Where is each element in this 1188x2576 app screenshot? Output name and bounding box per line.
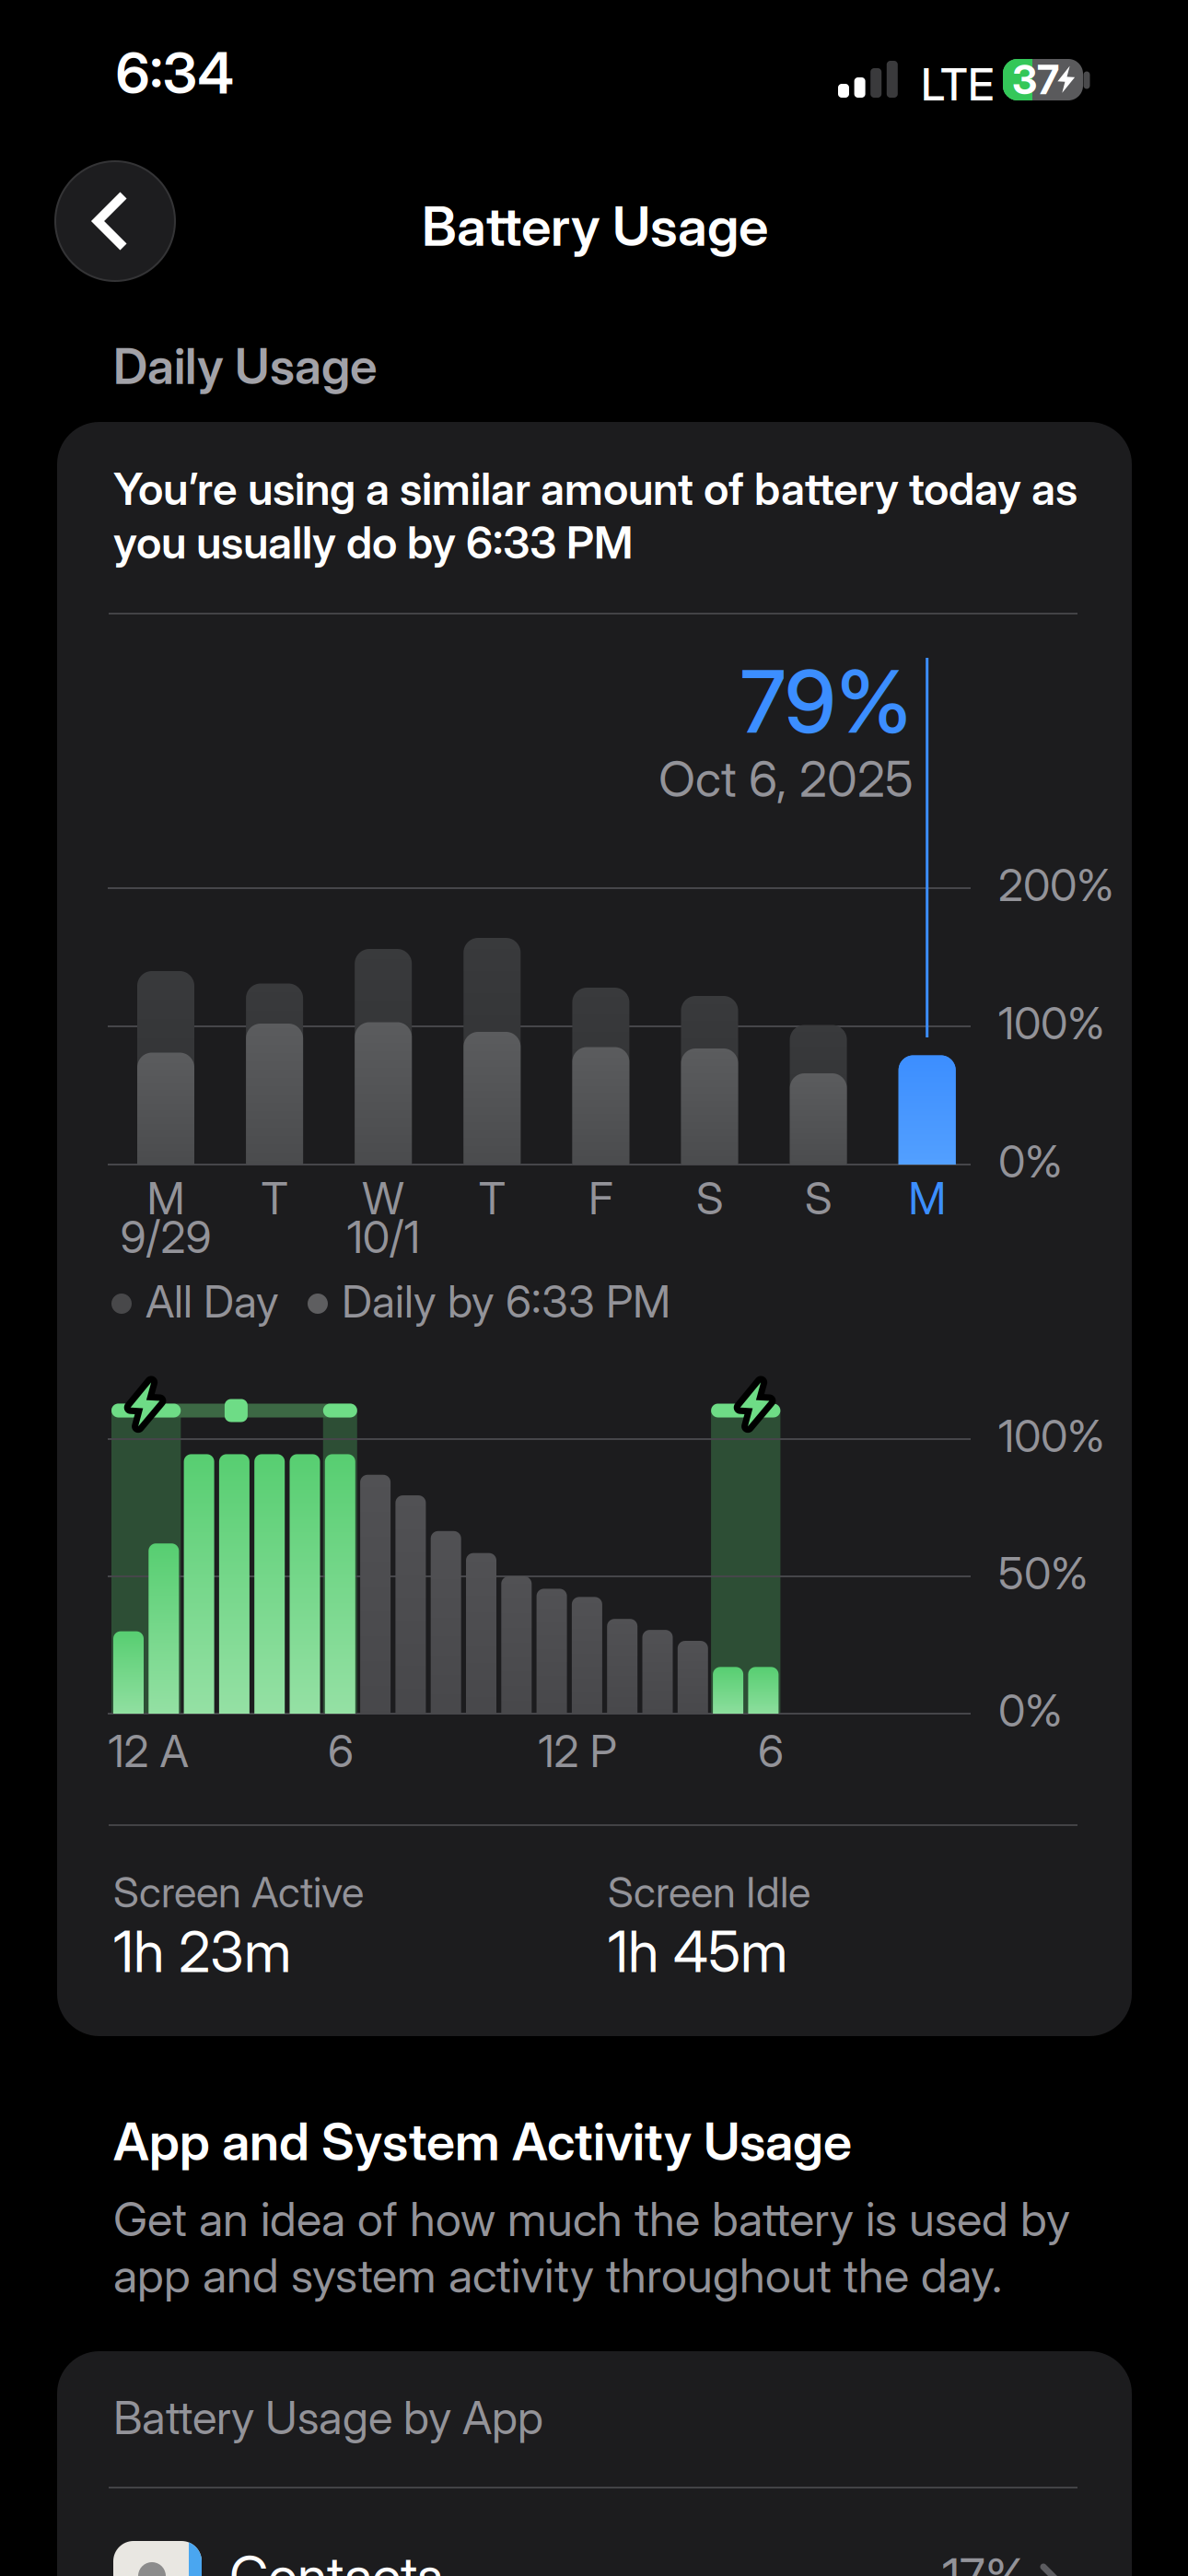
staticText: T [479,1172,505,1225]
staticText: 0% [998,1684,1063,1737]
staticText: Contacts [229,2543,443,2576]
staticText: 0% [998,1135,1063,1188]
staticText: Battery Usage [422,193,768,259]
staticText: 79% [740,649,912,753]
staticText: 1h 45m [608,1917,787,1986]
staticText: Oct 6, 2025 [658,749,914,809]
staticText: You’re using a similar amount of battery… [113,462,1077,569]
staticText: 100% [998,1409,1105,1463]
staticText: Get an idea of how much the battery is u… [113,2191,1070,2304]
staticText: 12 A [108,1724,188,1778]
staticText: 50% [998,1547,1089,1600]
staticText: 9/29 [120,1210,211,1264]
staticText: 100% [998,996,1105,1050]
staticText: 6 [328,1724,354,1778]
staticText: 10/1 [347,1210,420,1264]
staticText: Daily Usage [113,336,378,396]
button[interactable]: Contacts [113,2541,1188,2576]
staticText: Daily by 6:33 PM [342,1275,670,1328]
staticText: M [908,1172,946,1225]
staticText: 17% [942,2547,1027,2576]
staticText: 37 [1012,55,1059,104]
staticText: 12 P [538,1724,617,1778]
staticText: 200% [998,858,1114,912]
staticText: 6 [758,1724,784,1778]
staticText: F [588,1172,613,1225]
staticText: M [147,1172,185,1225]
staticText: LTE [921,58,994,111]
button[interactable]: Back [55,161,175,281]
staticText: Screen Idle [608,1867,810,1917]
staticText: T [261,1172,288,1225]
staticText: W [362,1172,404,1225]
staticText: S [696,1172,723,1225]
staticText: All Day [146,1275,279,1328]
staticText: 1h 23m [113,1917,291,1986]
staticText: Battery Usage by App [113,2390,543,2445]
staticText: 6:34 [116,39,234,107]
staticText: Screen Active [113,1867,364,1917]
staticText: App and System Activity Usage [113,2110,852,2173]
staticText: S [805,1172,832,1225]
